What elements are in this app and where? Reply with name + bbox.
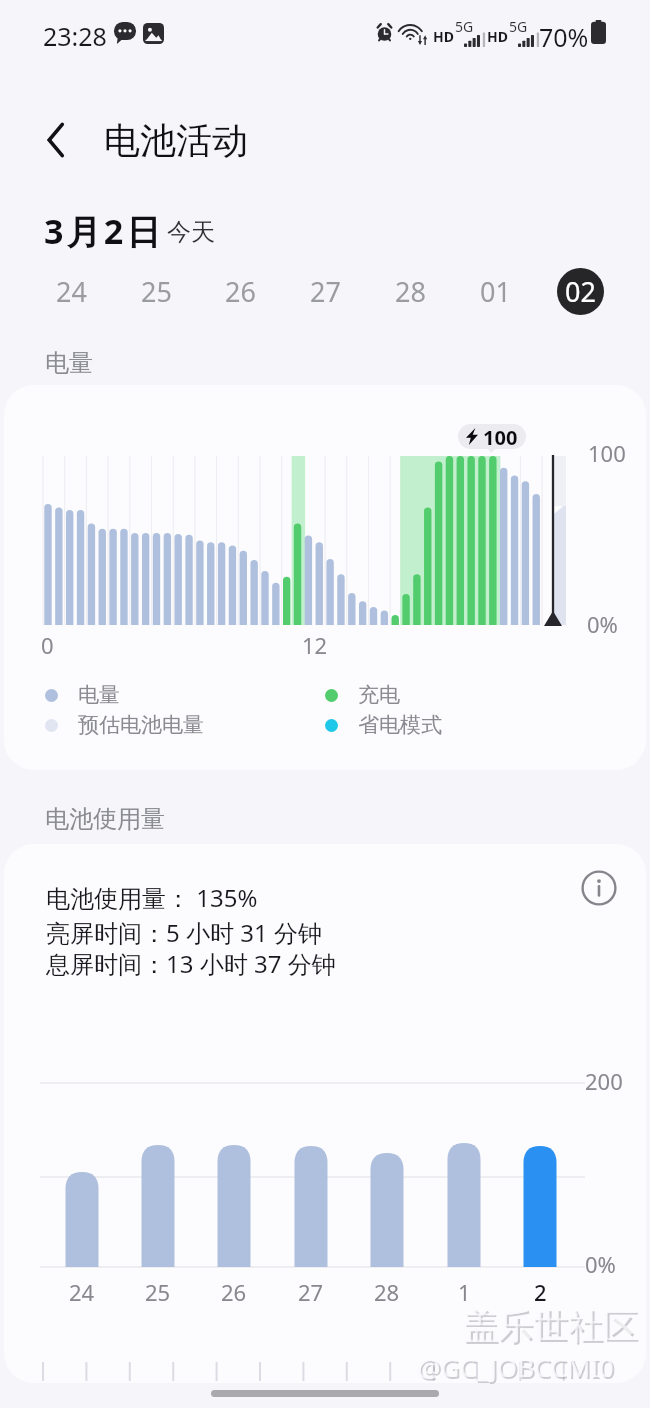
button[interactable]: 02 xyxy=(550,261,610,321)
button[interactable]: 01 xyxy=(465,261,525,321)
staticText: 息屏时间：13 小时 37 分钟 xyxy=(46,947,336,980)
button[interactable]: 电量 xyxy=(39,681,269,713)
staticText: HD xyxy=(487,27,508,46)
staticText: 1 xyxy=(458,1277,471,1307)
button[interactable]: 24 xyxy=(41,261,101,321)
staticText: 12 xyxy=(302,630,328,660)
staticText: 0% xyxy=(587,609,618,639)
staticText: 27 xyxy=(298,1277,324,1307)
button[interactable]: 充电 xyxy=(319,681,549,713)
staticText: 盖乐世社区 xyxy=(463,1304,638,1348)
staticText: 25 xyxy=(141,273,172,310)
staticText: @GC_JOBCCMI0 xyxy=(417,1349,614,1384)
staticText: 今天 xyxy=(167,217,215,247)
button[interactable]: 预估电池电量 xyxy=(39,711,269,743)
staticText: 100 xyxy=(588,438,626,468)
staticText: 预估电池电量 xyxy=(78,712,204,738)
button[interactable]: 28 xyxy=(380,261,440,321)
staticText: 24 xyxy=(69,1277,95,1307)
staticText: 电量 xyxy=(78,682,120,708)
staticText: 0 xyxy=(41,630,54,660)
staticText: 24 xyxy=(56,273,87,310)
staticText: 盖乐世社区 xyxy=(465,1306,640,1350)
staticText: 02 xyxy=(565,273,596,310)
staticText: HD xyxy=(433,27,454,46)
button[interactable]: 25 xyxy=(126,261,186,321)
button[interactable]: 省电模式 xyxy=(319,711,549,743)
staticText: 亮屏时间：5 小时 31 分钟 xyxy=(46,916,322,949)
staticText: 省电模式 xyxy=(358,712,442,738)
staticText: 5G xyxy=(509,17,528,36)
staticText: 28 xyxy=(374,1277,400,1307)
staticText: @GC_JOBCCMI0 xyxy=(419,1351,616,1386)
staticText: 100 xyxy=(483,424,518,449)
staticText: 200 xyxy=(585,1066,623,1096)
button[interactable]: 27 xyxy=(295,261,355,321)
staticText: 3月2日 xyxy=(44,208,164,254)
staticText: 电池活动 xyxy=(104,118,248,163)
staticText: 26 xyxy=(221,1277,247,1307)
button[interactable]: Back xyxy=(28,112,84,168)
staticText: 2 xyxy=(534,1277,547,1307)
staticText: 电池使用量 xyxy=(45,804,165,834)
staticText: 25 xyxy=(145,1277,171,1307)
staticText: 23:28 xyxy=(43,19,107,53)
staticText: 5G xyxy=(455,17,474,36)
staticText: 28 xyxy=(395,273,426,310)
button[interactable]: 26 xyxy=(210,261,270,321)
staticText: 电池使用量： 135% xyxy=(46,881,258,914)
staticText: 26 xyxy=(225,273,256,310)
staticText: 电量 xyxy=(45,348,93,378)
staticText: 充电 xyxy=(358,682,400,708)
staticText: 70% xyxy=(539,20,589,54)
staticText: 01 xyxy=(480,273,511,310)
button[interactable]: Info xyxy=(577,866,621,910)
staticText: 0% xyxy=(585,1249,616,1279)
staticText: 27 xyxy=(310,273,341,310)
